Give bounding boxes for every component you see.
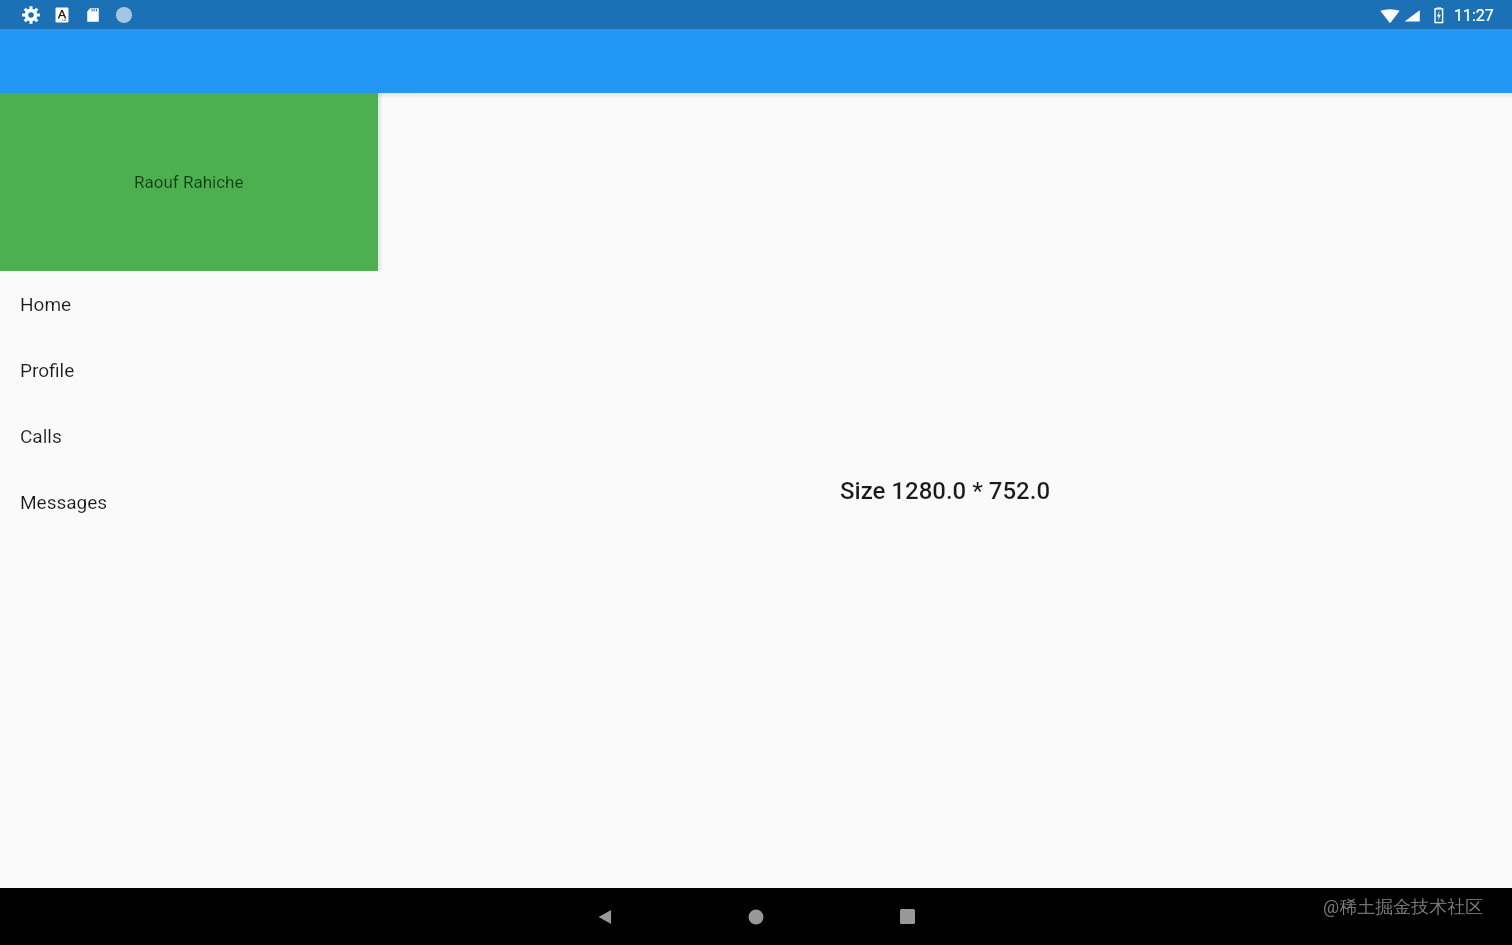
button[interactable]: Home [0,271,378,337]
staticText: Profile [20,359,75,381]
staticText: Raouf Rahiche [134,172,244,192]
staticText: Home [20,293,72,315]
button[interactable]: Back [578,888,632,945]
staticText: Size 1280.0 * 752.0 [840,477,1051,505]
staticText: 11:27 [1454,6,1494,25]
staticText: Calls [20,425,62,447]
button[interactable]: Home [729,888,783,945]
button[interactable]: Profile [0,337,378,403]
button[interactable]: Raouf Rahiche [0,93,378,271]
button[interactable]: Messages [0,469,378,535]
staticText: @稀土掘金技术社区 [1323,896,1484,919]
button[interactable]: Recents [880,888,934,945]
button[interactable]: Calls [0,403,378,469]
staticText: Messages [20,491,108,513]
